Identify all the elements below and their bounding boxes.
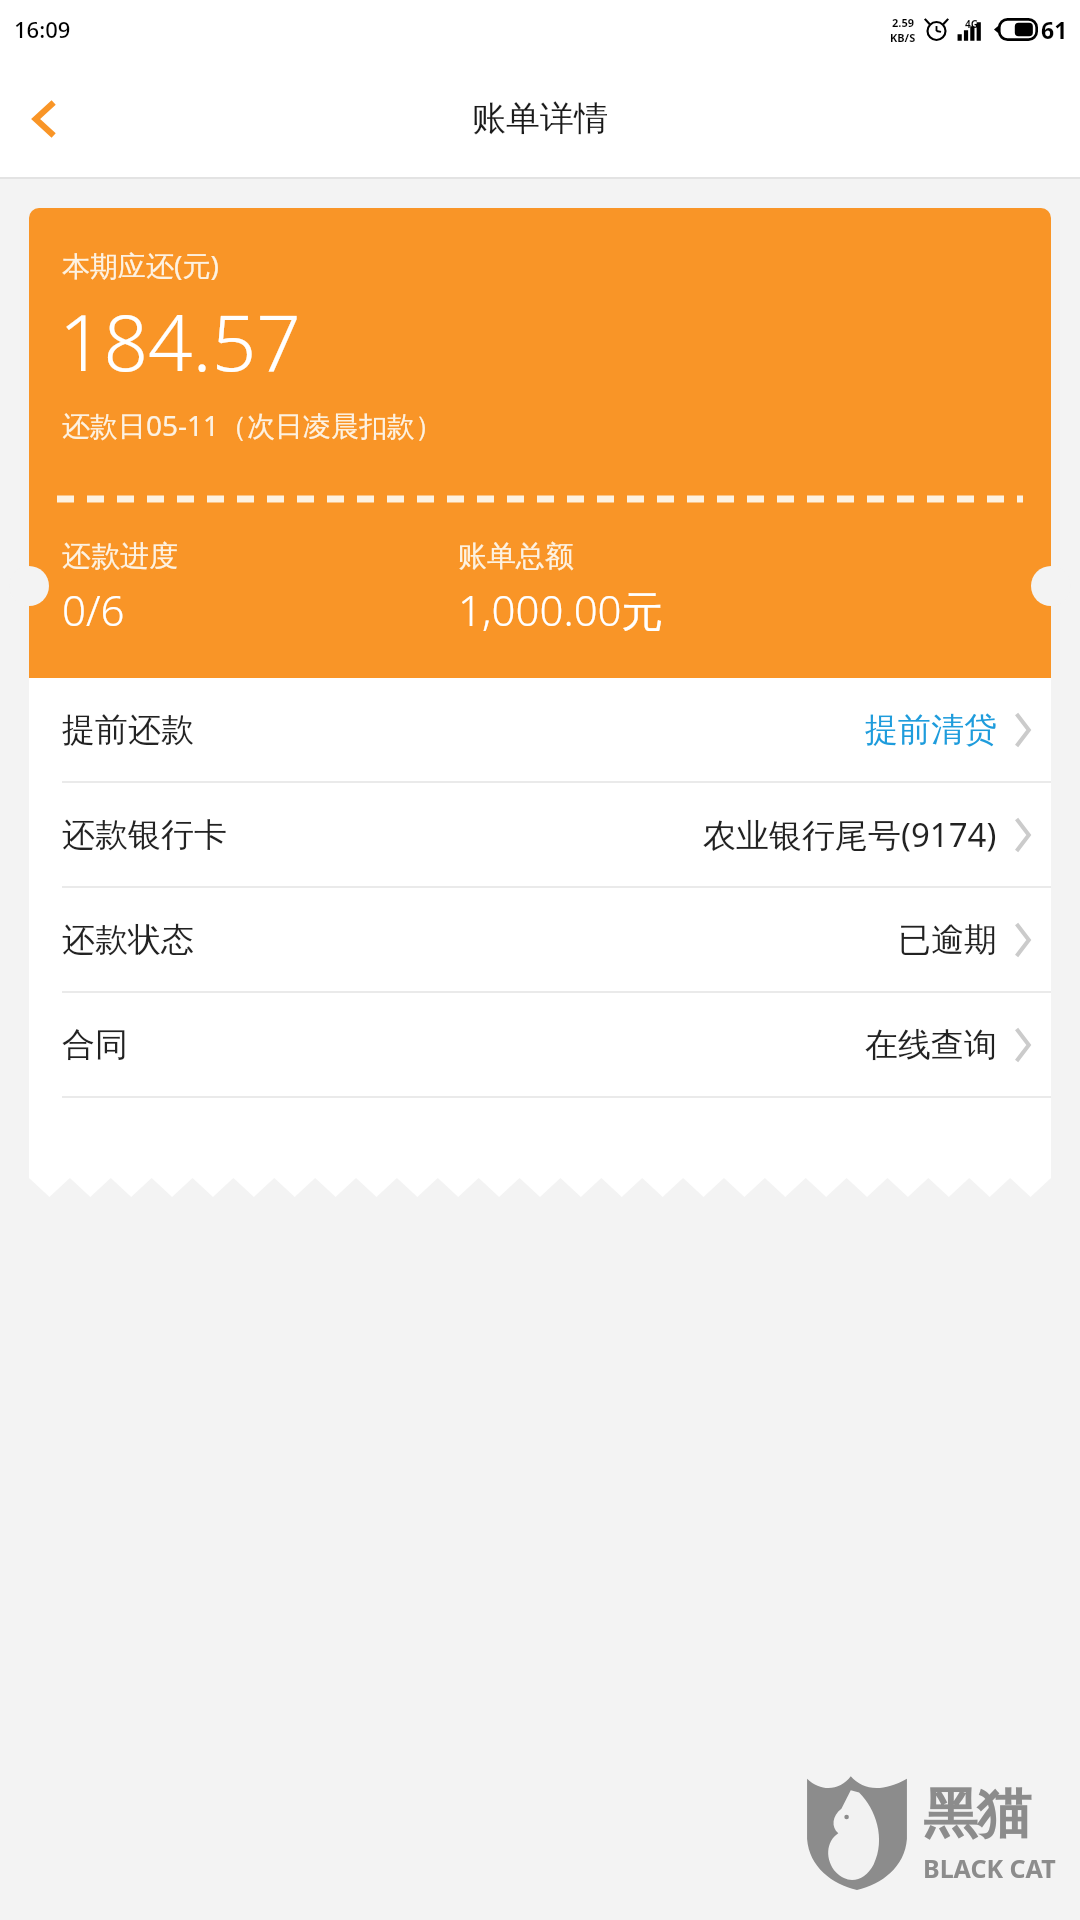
staticText: 在线查询 [865,1024,997,1066]
staticText: 16:09 [14,14,71,44]
staticText: 还款银行卡 [62,814,227,856]
staticText: 提前还款 [62,709,194,751]
staticText: 提前清贷 [865,709,997,751]
staticText: 184.57 [59,288,301,394]
staticText: 还款日05-11（次日凌晨扣款） [62,406,444,444]
staticText: 账单总额 [458,538,574,575]
button[interactable]: 合同 [29,993,1051,1096]
staticText: 还款状态 [62,919,194,961]
staticText: 4G [965,17,978,31]
staticText: BLACK CAT [923,1851,1056,1885]
staticText: 0/6 [62,581,125,638]
staticText: KB/S [890,30,916,45]
staticText: 1,000.00元 [458,581,664,638]
staticText: 还款进度 [62,538,178,575]
button[interactable]: 还款状态 [29,888,1051,991]
staticText: 合同 [62,1024,128,1066]
button[interactable]: 提前还款 [29,678,1051,781]
staticText: 账单详情 [472,97,608,140]
button[interactable]: Back [6,80,84,158]
button[interactable]: 还款银行卡 [29,783,1051,886]
staticText: 农业银行尾号(9174) [703,812,997,857]
staticText: 2.59 [892,15,914,30]
staticText: 本期应还(元) [62,246,219,284]
staticText: 已逾期 [898,919,997,961]
staticText: 61 [1041,14,1068,45]
staticText: 黑猫 [923,1780,1031,1848]
